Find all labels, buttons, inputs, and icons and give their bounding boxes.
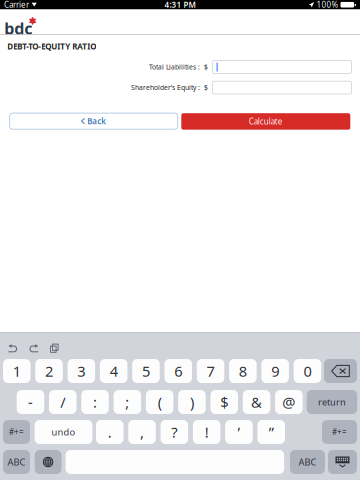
staticText: return bbox=[318, 396, 346, 408]
staticText: 1 bbox=[13, 361, 21, 381]
button[interactable]: Hide keyboard bbox=[328, 450, 357, 474]
staticText: #+= bbox=[9, 427, 24, 437]
button[interactable]: 4 bbox=[100, 359, 127, 383]
button[interactable]: 7 bbox=[197, 359, 224, 383]
staticText: 0 bbox=[303, 361, 311, 381]
button[interactable]: ! bbox=[193, 420, 220, 444]
button[interactable]: 8 bbox=[229, 359, 257, 383]
button[interactable]: ? bbox=[161, 420, 188, 444]
button[interactable]: undo bbox=[35, 420, 92, 444]
button[interactable]: , bbox=[128, 420, 156, 444]
button[interactable]: Back bbox=[9, 113, 178, 130]
staticText: ; bbox=[125, 392, 129, 412]
staticText: 7 bbox=[206, 361, 214, 381]
button[interactable]: ’ bbox=[225, 420, 253, 444]
button[interactable]: Undo bbox=[7, 343, 18, 353]
staticText: ABC bbox=[7, 456, 25, 468]
button[interactable]: $ bbox=[210, 390, 238, 414]
staticText: / bbox=[60, 392, 65, 412]
button[interactable]: 0 bbox=[294, 359, 321, 383]
button[interactable]: . bbox=[96, 420, 123, 444]
staticText: : bbox=[93, 392, 97, 412]
staticText: @ bbox=[282, 392, 295, 412]
button[interactable]: Paste bbox=[50, 344, 59, 353]
staticText: Carrier bbox=[4, 0, 29, 10]
staticText: ? bbox=[171, 422, 177, 442]
button[interactable]: Delete bbox=[324, 359, 357, 383]
staticText: 8 bbox=[239, 361, 247, 381]
button[interactable]: Redo bbox=[29, 343, 39, 353]
staticText: 9 bbox=[271, 361, 279, 381]
button[interactable]: @ bbox=[275, 390, 303, 414]
staticText: ! bbox=[205, 422, 209, 442]
button[interactable]: #+= bbox=[322, 420, 357, 444]
staticText: 5 bbox=[142, 361, 150, 381]
button[interactable]: / bbox=[49, 390, 76, 414]
button[interactable]: 6 bbox=[164, 359, 192, 383]
button[interactable]: #+= bbox=[3, 420, 30, 444]
button[interactable]: Calculate bbox=[181, 113, 350, 130]
staticText: #+= bbox=[332, 427, 347, 437]
staticText: $ bbox=[200, 83, 208, 92]
staticText: . bbox=[108, 422, 112, 442]
staticText: 2 bbox=[45, 361, 53, 381]
staticText: Total Liabilities : bbox=[149, 63, 200, 71]
staticText: Back bbox=[87, 116, 106, 126]
button[interactable]: ” bbox=[257, 420, 285, 444]
staticText: - bbox=[28, 392, 33, 412]
button[interactable]: ( bbox=[146, 390, 173, 414]
staticText: ABC bbox=[298, 456, 316, 468]
button[interactable]: Next keyboard bbox=[35, 450, 61, 474]
staticText: ( bbox=[158, 392, 162, 412]
staticText: , bbox=[140, 422, 144, 442]
staticText: 100% bbox=[316, 0, 338, 10]
staticText: DEBT-TO-EQUITY RATIO bbox=[7, 41, 96, 52]
button[interactable]: & bbox=[243, 390, 270, 414]
staticText: ” bbox=[269, 422, 274, 442]
staticText: 4:31 PM bbox=[164, 0, 195, 10]
staticText: $ bbox=[220, 392, 228, 412]
staticText: & bbox=[251, 392, 262, 412]
staticText: undo bbox=[51, 426, 75, 438]
button[interactable]: return bbox=[307, 390, 357, 414]
button[interactable]: 2 bbox=[35, 359, 63, 383]
button[interactable]: ABC bbox=[290, 450, 325, 474]
staticText: ’ bbox=[237, 422, 240, 442]
staticText: Shareholder’s Equity : bbox=[131, 83, 200, 92]
staticText: bdc bbox=[4, 18, 32, 39]
staticText: Calculate bbox=[249, 116, 283, 127]
button[interactable]: 5 bbox=[132, 359, 160, 383]
button[interactable]: : bbox=[81, 390, 109, 414]
button[interactable]: ; bbox=[114, 390, 141, 414]
staticText: 3 bbox=[77, 361, 85, 381]
button[interactable]: 9 bbox=[261, 359, 289, 383]
button[interactable]: - bbox=[17, 390, 44, 414]
button[interactable]: ) bbox=[178, 390, 206, 414]
button[interactable]: ABC bbox=[3, 450, 30, 474]
staticText: 6 bbox=[174, 361, 182, 381]
button[interactable]: 1 bbox=[3, 359, 30, 383]
button[interactable]: 3 bbox=[68, 359, 95, 383]
staticText: 4 bbox=[110, 361, 118, 381]
staticText: ) bbox=[190, 392, 194, 412]
staticText: $ bbox=[200, 63, 208, 71]
